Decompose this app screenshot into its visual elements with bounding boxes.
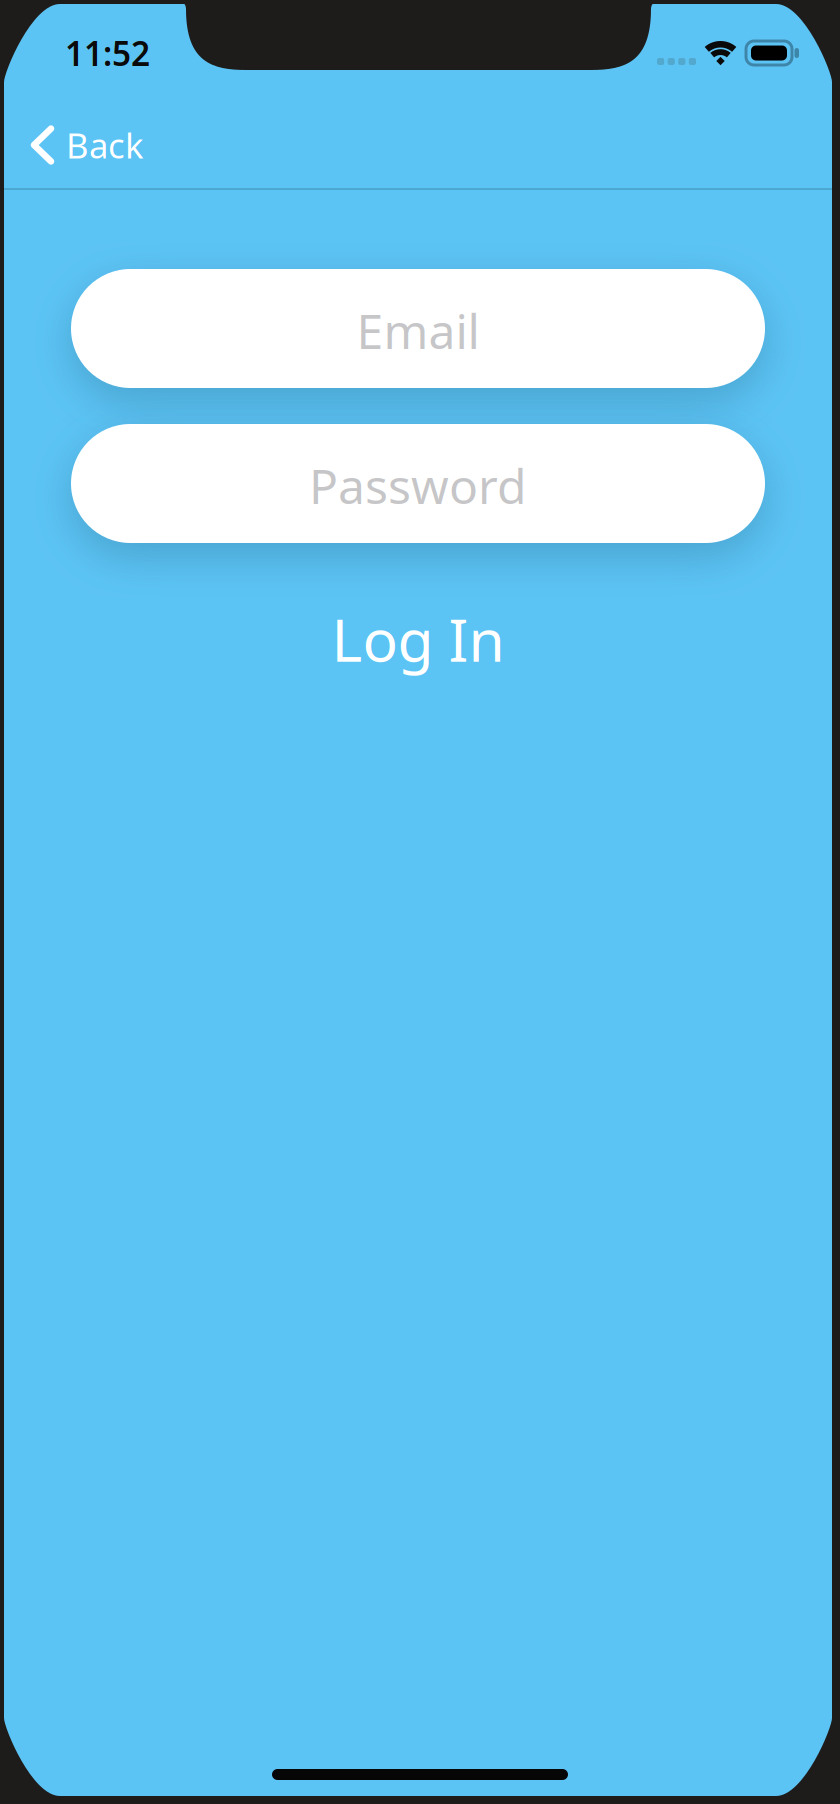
- staticText: Back: [66, 122, 144, 168]
- staticText: Password: [309, 454, 527, 517]
- button[interactable]: Password: [71, 424, 765, 543]
- button[interactable]: Log In: [268, 603, 568, 675]
- button[interactable]: Email: [71, 269, 765, 388]
- button[interactable]: Back: [0, 86, 172, 204]
- staticText: Log In: [331, 600, 504, 678]
- staticText: 11:52: [65, 31, 150, 75]
- staticText: Email: [356, 299, 479, 362]
